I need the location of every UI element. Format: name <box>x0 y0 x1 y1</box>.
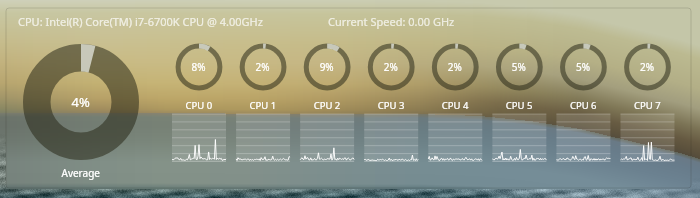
button[interactable] <box>0 0 700 198</box>
